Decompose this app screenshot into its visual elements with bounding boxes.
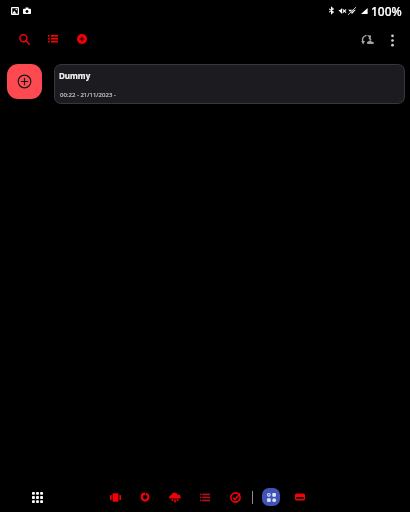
button[interactable]: Carousel: [101, 483, 129, 511]
button[interactable]: More options: [379, 27, 405, 53]
button[interactable]: Apps: [23, 483, 51, 511]
button[interactable]: Sort list: [39, 26, 67, 54]
staticText: 00:22 - 21/11/2023 -: [60, 91, 116, 99]
button[interactable]: All apps: [257, 483, 285, 511]
staticText: 100%: [371, 3, 402, 19]
button[interactable]: Timer: [131, 483, 159, 511]
button[interactable]: List: [191, 483, 219, 511]
button[interactable]: Add: [68, 25, 96, 53]
button[interactable]: Add entry: [7, 64, 42, 99]
button[interactable]: Weather: [161, 483, 189, 511]
staticText: Dummy: [59, 70, 91, 81]
button[interactable]: Done: [221, 483, 249, 511]
button[interactable]: Dummy: [54, 64, 405, 104]
button[interactable]: Sync: [352, 25, 382, 55]
button[interactable]: Search: [10, 25, 38, 53]
button[interactable]: Card: [286, 483, 314, 511]
